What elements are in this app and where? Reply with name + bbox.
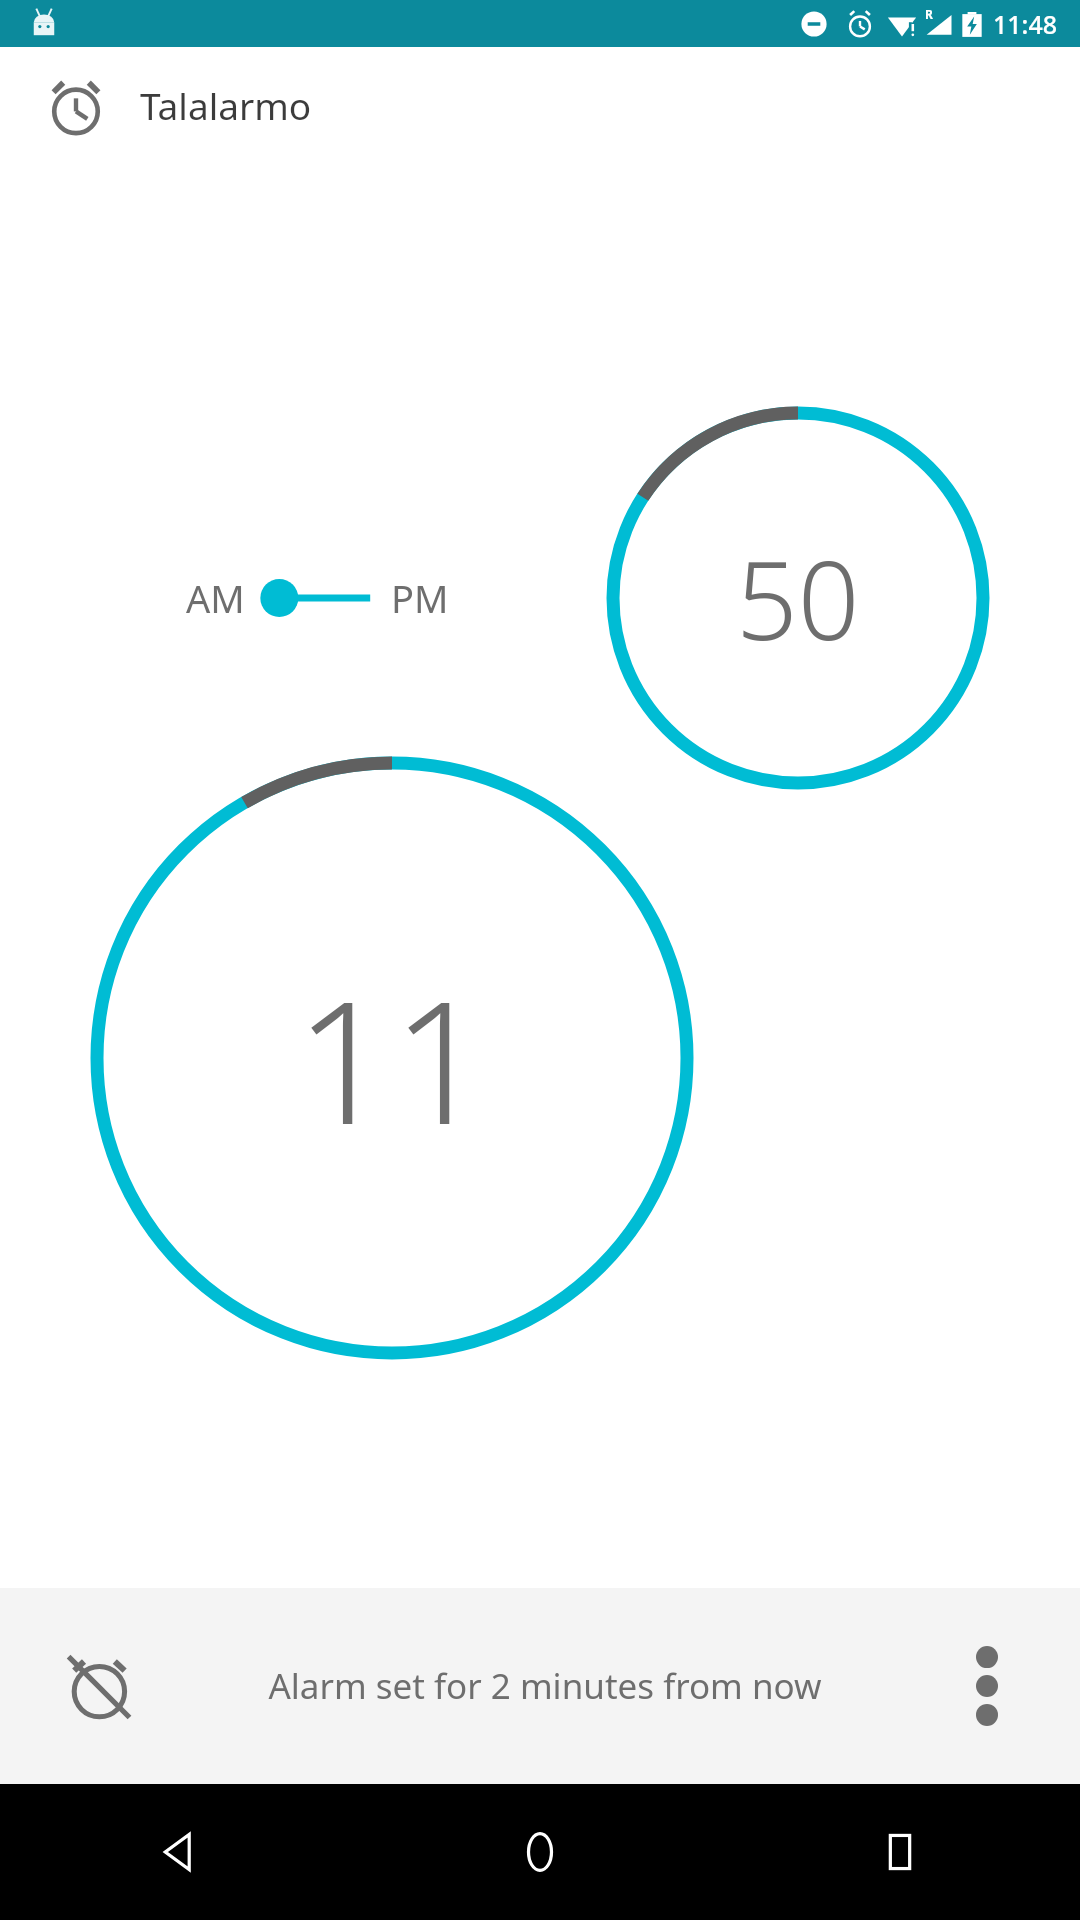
staticText: 11 (295, 942, 490, 1174)
button[interactable]: 11 (97, 763, 687, 1353)
button[interactable]: Home (360, 1784, 720, 1920)
staticText: PM (391, 572, 449, 624)
button[interactable]: Back (0, 1784, 360, 1920)
button[interactable]: Cancel alarm (0, 1588, 196, 1784)
staticText: 50 (736, 525, 860, 672)
staticText: 11:48 (993, 7, 1058, 41)
staticText: AM (186, 572, 245, 624)
button[interactable]: Alarm set for 2 minutes from now (196, 1588, 894, 1784)
staticText: Alarm set for 2 minutes from now (268, 1662, 822, 1710)
button[interactable]: Talalarmo (0, 47, 1080, 162)
staticText: R (925, 6, 933, 22)
button[interactable]: Recent apps (720, 1784, 1080, 1920)
button[interactable]: More options (894, 1588, 1080, 1784)
staticText: Talalarmo (140, 80, 312, 130)
button[interactable]: AM (180, 562, 455, 634)
button[interactable]: 50 (613, 413, 983, 783)
